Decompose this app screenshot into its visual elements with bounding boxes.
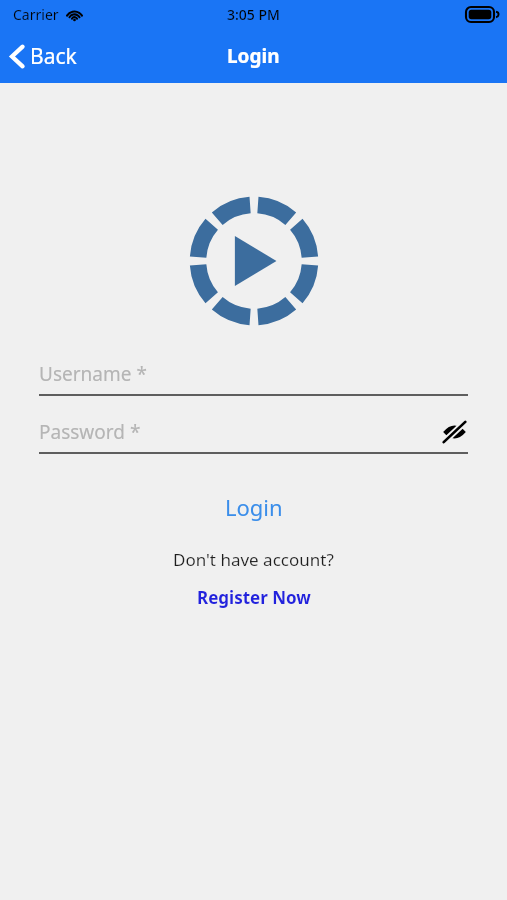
staticText: Register Now (197, 586, 311, 609)
staticText: Login (225, 492, 283, 522)
other: Show password (441, 421, 468, 443)
staticText: 3:05 PM (227, 5, 280, 24)
staticText: Carrier (13, 5, 59, 24)
staticText: Username * (39, 361, 147, 387)
button[interactable]: Register Now (183, 583, 325, 612)
button[interactable]: Password * (39, 417, 468, 454)
button[interactable]: Username * (39, 359, 468, 396)
staticText: Login (227, 43, 280, 69)
button[interactable]: Back (0, 34, 91, 79)
staticText: Back (30, 42, 77, 71)
other: Back (10, 45, 24, 68)
staticText: Password * (39, 419, 141, 445)
staticText: Don't have account? (173, 548, 334, 571)
button[interactable]: Login (195, 487, 313, 527)
